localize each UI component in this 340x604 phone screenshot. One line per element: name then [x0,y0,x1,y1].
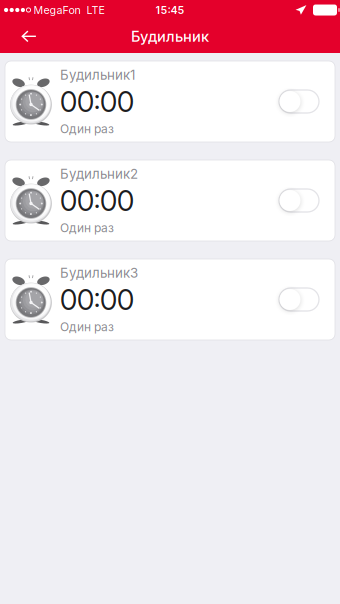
staticText: Будильник2 [60,166,138,182]
staticText: Будильник1 [60,67,135,83]
button[interactable]: Back [7,20,51,53]
staticText: Будильник [131,28,209,45]
button[interactable]: Toggle Будильник3 [279,288,335,311]
staticText: Один раз [60,320,114,334]
staticText: 00:00 [60,184,134,218]
staticText: Один раз [60,122,114,136]
staticText: Один раз [60,221,114,235]
staticText: 15:45 [155,3,184,16]
staticText: LTE [87,3,105,16]
button[interactable]: Toggle Будильник1 [279,90,335,113]
staticText: MegaFon [34,3,81,16]
staticText: 00:00 [60,283,134,317]
staticText: 00:00 [60,85,134,119]
button[interactable]: Toggle Будильник2 [279,189,335,212]
staticText: Будильник3 [60,265,138,281]
